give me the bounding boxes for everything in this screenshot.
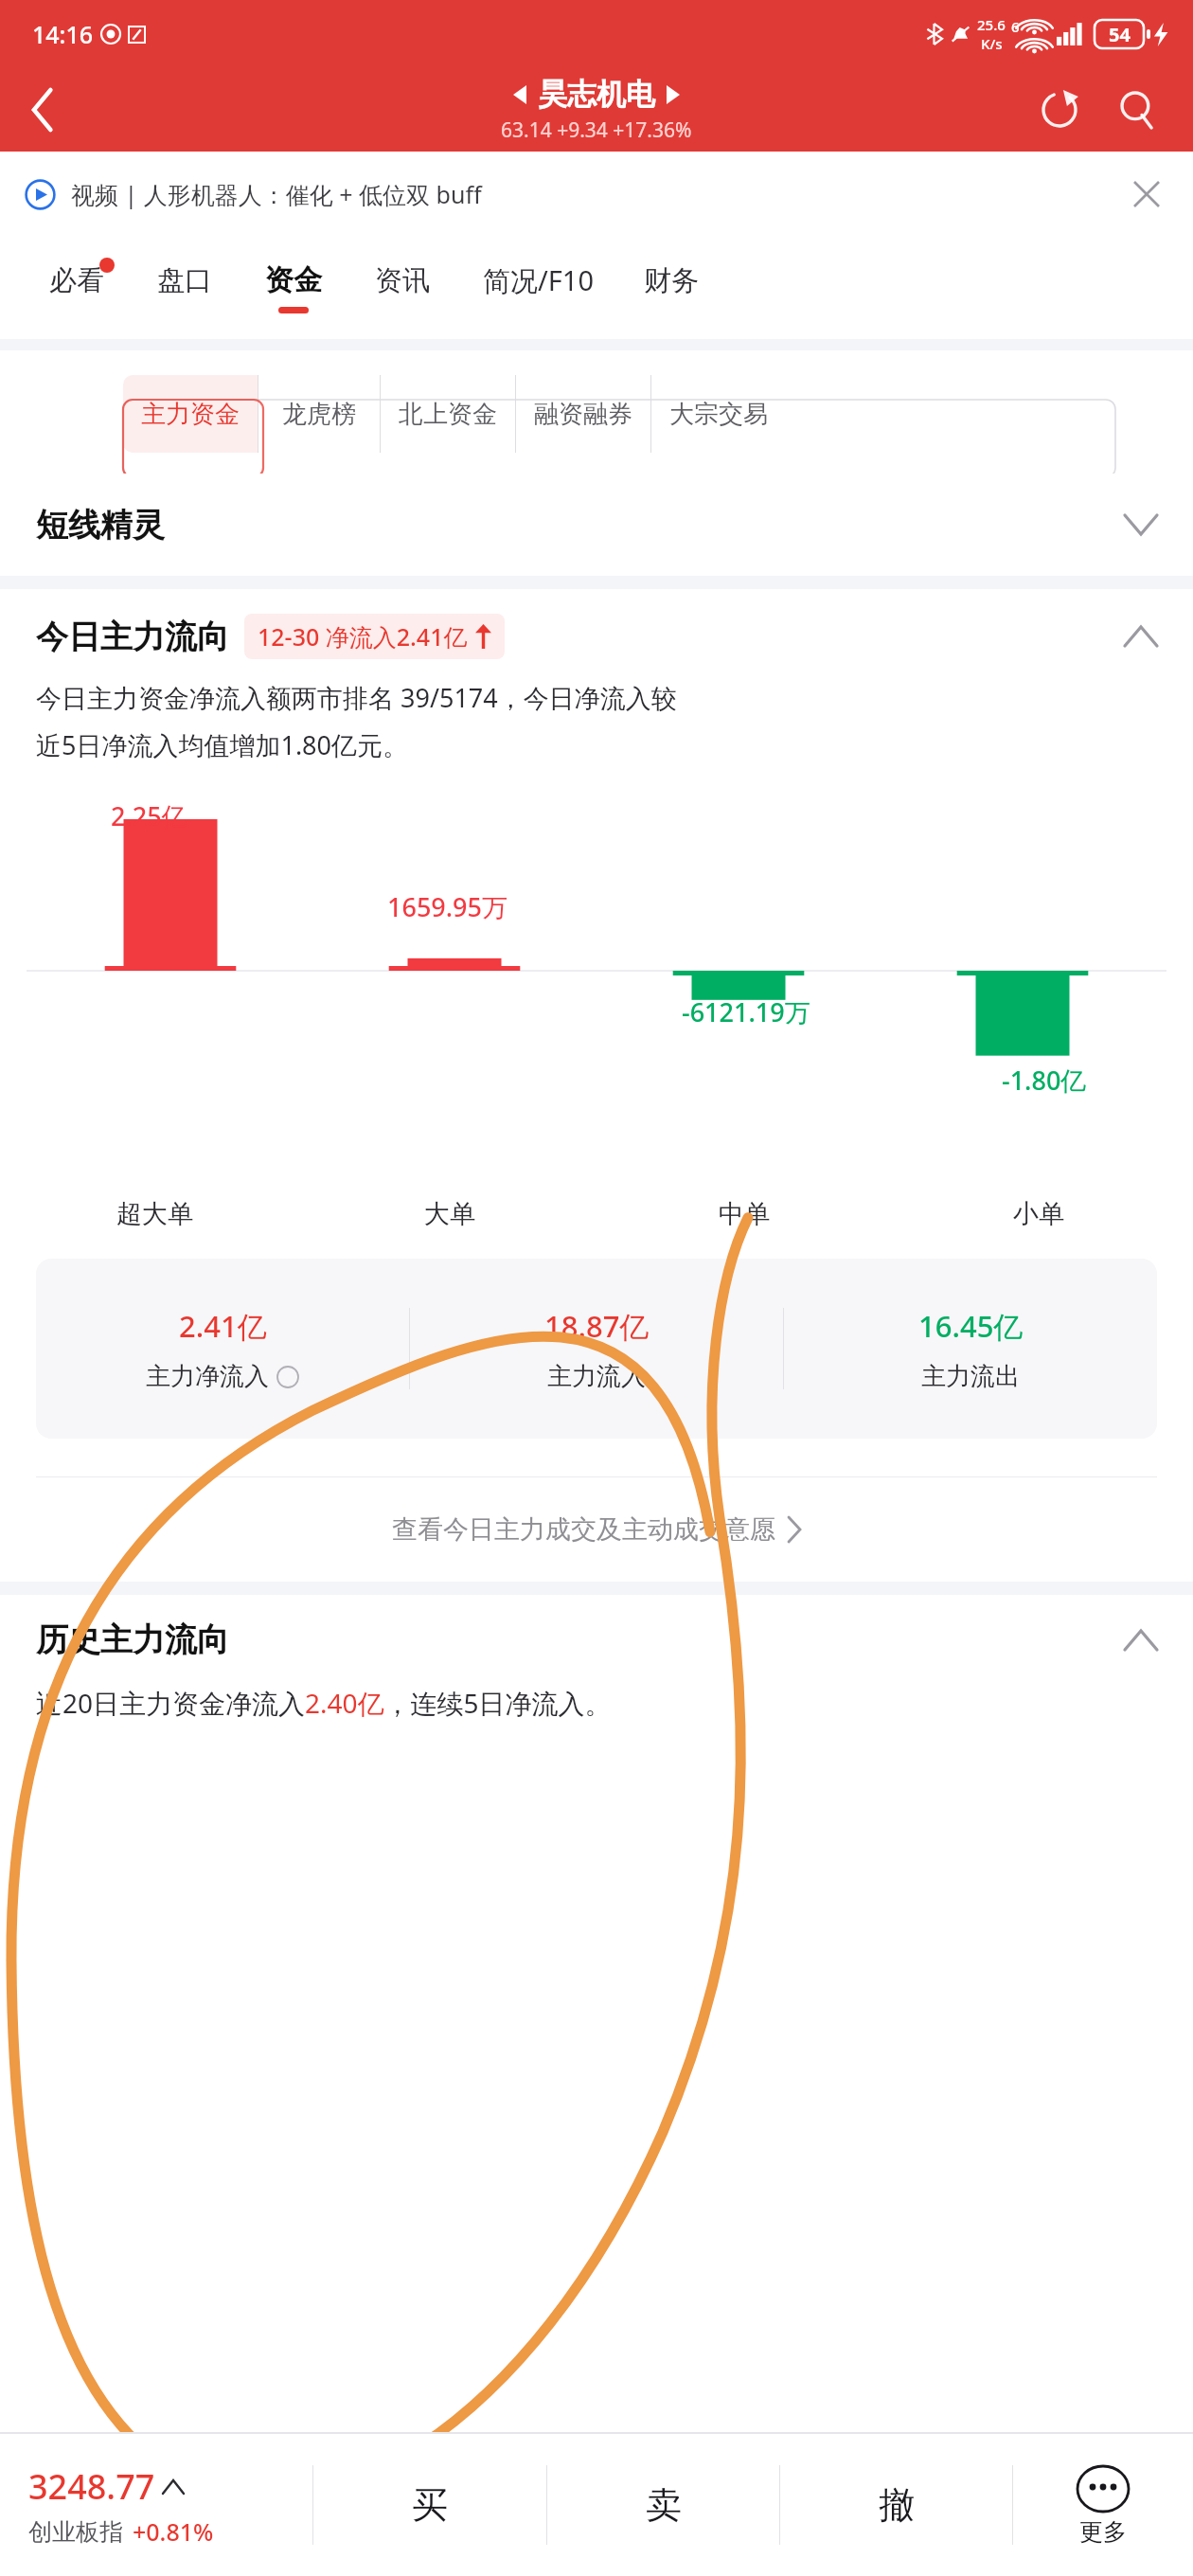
button[interactable]: Search: [1098, 71, 1176, 149]
staticText: 短线精灵: [36, 505, 165, 546]
button[interactable]: 融资融券: [516, 375, 650, 453]
button[interactable]: 查看今日主力成交及主动成交意愿: [0, 1477, 1193, 1582]
button[interactable]: Refresh: [1021, 71, 1098, 149]
staticText: 54: [1109, 22, 1131, 47]
staticText: 财务: [644, 263, 699, 298]
staticText: 历史主力流向: [36, 1619, 229, 1660]
button[interactable]: 16.45亿: [784, 1306, 1157, 1392]
staticText: 1659.95万: [387, 889, 508, 924]
staticText: 主力资金: [141, 399, 240, 430]
staticText: 今日主力流向: [36, 617, 229, 657]
button[interactable]: 2.41亿: [36, 1306, 409, 1392]
staticText: 北上资金: [399, 399, 497, 430]
button[interactable]: 短线精灵: [0, 474, 1193, 576]
staticText: 2.41亿: [179, 1306, 267, 1346]
staticText: 撤: [879, 2482, 915, 2528]
staticText: 3248.77: [28, 2463, 155, 2510]
staticText: 更多: [1079, 2517, 1127, 2547]
button[interactable]: 撤: [780, 2434, 1012, 2576]
button[interactable]: 3248.77: [0, 2463, 312, 2548]
staticText: 昊志机电: [538, 76, 655, 113]
staticText: 买: [412, 2482, 448, 2528]
button[interactable]: 视频 | 人形机器人：催化 + 低位双 buff: [0, 152, 1193, 237]
button[interactable]: 今日主力流向: [36, 614, 1157, 659]
staticText: 盘口: [157, 263, 212, 298]
button[interactable]: 历史主力流向: [36, 1619, 1157, 1660]
staticText: 近20日主力资金净流入2.40亿，连续5日净流入。: [36, 1685, 612, 1721]
staticText: 25.6: [977, 15, 1006, 34]
button[interactable]: Close: [1112, 159, 1182, 229]
button[interactable]: 主力资金: [123, 375, 258, 453]
staticText: K/s: [981, 34, 1003, 53]
staticText: 资金: [265, 262, 322, 298]
button[interactable]: 盘口: [133, 237, 237, 339]
button[interactable]: 简况/F10: [458, 237, 619, 339]
staticText: 14:16: [32, 18, 94, 50]
staticText: 简况/F10: [483, 261, 595, 299]
staticText: 今日主力资金净流入额两市排名 39/5174，今日净流入较 近5日净流入均值增加…: [36, 680, 677, 762]
staticText: 小单: [1013, 1198, 1064, 1230]
staticText: 2.25亿: [111, 798, 187, 833]
staticText: 大单: [424, 1198, 475, 1230]
staticText: 中单: [719, 1198, 770, 1230]
staticText: 必看: [49, 263, 104, 298]
button[interactable]: Back: [0, 68, 85, 152]
staticText: -6121.19万: [682, 994, 810, 1029]
button[interactable]: 财务: [623, 237, 720, 339]
staticText: 16.45亿: [918, 1306, 1024, 1346]
staticText: 主力净流入: [146, 1361, 269, 1392]
button[interactable]: 大宗交易: [651, 375, 786, 453]
button[interactable]: 买: [313, 2434, 546, 2576]
button[interactable]: 18.87亿: [410, 1306, 783, 1392]
staticText: 卖: [646, 2482, 682, 2528]
staticText: 6: [1011, 17, 1020, 36]
staticText: 12-30 净流入2.41亿: [258, 620, 468, 653]
button[interactable]: 卖: [547, 2434, 779, 2576]
staticText: 龙虎榜: [282, 399, 356, 430]
button[interactable]: 资讯: [350, 237, 454, 339]
staticText: 创业板指: [28, 2517, 123, 2547]
button[interactable]: 资金: [240, 237, 347, 339]
staticText: -1.80亿: [1002, 1063, 1087, 1098]
staticText: 融资融券: [534, 399, 632, 430]
staticText: 超大单: [116, 1198, 193, 1230]
button[interactable]: 昊志机电: [501, 76, 692, 144]
button[interactable]: 北上资金: [381, 375, 515, 453]
staticText: 资讯: [375, 263, 430, 298]
staticText: 63.14 +9.34 +17.36%: [501, 116, 692, 144]
button[interactable]: 必看: [25, 237, 129, 339]
staticText: 主力流入: [547, 1361, 646, 1392]
button[interactable]: 更多: [1013, 2434, 1193, 2576]
staticText: 主力流出: [921, 1361, 1020, 1392]
staticText: 视频 | 人形机器人：催化 + 低位双 buff: [71, 178, 1112, 210]
staticText: 18.87亿: [544, 1306, 650, 1346]
staticText: +0.81%: [133, 2515, 214, 2548]
button[interactable]: 龙虎榜: [258, 375, 380, 453]
staticText: 大宗交易: [669, 399, 768, 430]
staticText: 查看今日主力成交及主动成交意愿: [392, 1513, 775, 1546]
